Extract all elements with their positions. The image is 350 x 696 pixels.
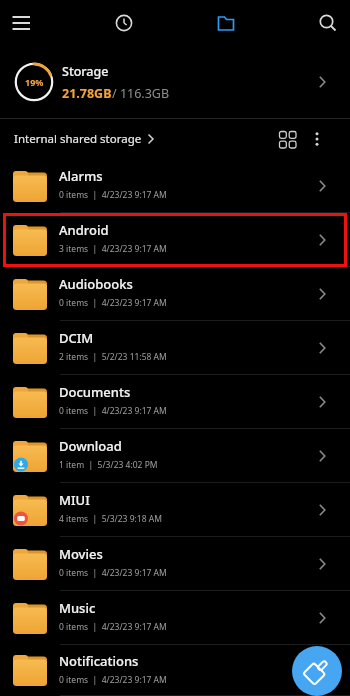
button[interactable] — [318, 13, 338, 33]
button[interactable] — [216, 13, 236, 33]
staticText: 19% — [25, 76, 44, 88]
staticText: 0 items | 4/23/23 9:17 AM — [59, 297, 167, 309]
staticText: 2 items | 5/2/23 11:58 AM — [59, 351, 167, 363]
button[interactable] — [114, 13, 134, 33]
staticText: 0 items | 4/23/23 9:17 AM — [59, 621, 167, 633]
staticText: Movies — [59, 545, 103, 563]
button[interactable]: Audiobooks — [0, 267, 350, 321]
button[interactable]: Documents — [0, 375, 350, 429]
staticText: MIUI — [59, 491, 90, 509]
staticText: 0 items | 4/23/23 9:17 AM — [59, 567, 167, 579]
button[interactable] — [279, 131, 296, 148]
button[interactable]: Alarms — [0, 159, 350, 213]
button[interactable]: Music — [0, 591, 350, 645]
staticText: 0 items | 4/23/23 9:17 AM — [59, 405, 167, 417]
button[interactable]: Download — [0, 429, 350, 483]
button[interactable]: Movies — [0, 537, 350, 591]
staticText: DCIM — [59, 329, 94, 347]
staticText: Android — [59, 221, 109, 239]
staticText: Download — [59, 437, 122, 455]
staticText: 0 items | 4/23/23 9:17 AM — [59, 189, 167, 201]
button[interactable]: Internal shared storage — [14, 131, 154, 147]
staticText: Internal shared storage — [14, 131, 142, 147]
staticText: / 116.3GB — [112, 85, 170, 102]
staticText: 4 items | 5/3/23 9:18 AM — [59, 513, 162, 525]
staticText: Storage — [62, 63, 109, 80]
staticText: Documents — [59, 383, 131, 401]
staticText: 3 items | 4/23/23 9:17 AM — [59, 243, 167, 255]
button[interactable]: DCIM — [0, 321, 350, 375]
staticText: Alarms — [59, 167, 103, 185]
button[interactable]: 19% — [0, 46, 350, 118]
staticText: Music — [59, 599, 96, 617]
button[interactable]: Android — [0, 213, 350, 267]
staticText: 0 items | 4/23/23 9:17 AM — [59, 674, 167, 686]
staticText: Audiobooks — [59, 275, 133, 293]
button[interactable] — [292, 646, 342, 696]
staticText: 1 item | 5/3/23 4:02 PM — [59, 459, 158, 471]
staticText: Notifications — [59, 652, 139, 670]
button[interactable] — [12, 13, 32, 33]
button[interactable]: MIUI — [0, 483, 350, 537]
button[interactable]: Notifications — [0, 645, 350, 696]
staticText: 21.78GB — [62, 85, 112, 102]
button[interactable] — [310, 132, 324, 146]
